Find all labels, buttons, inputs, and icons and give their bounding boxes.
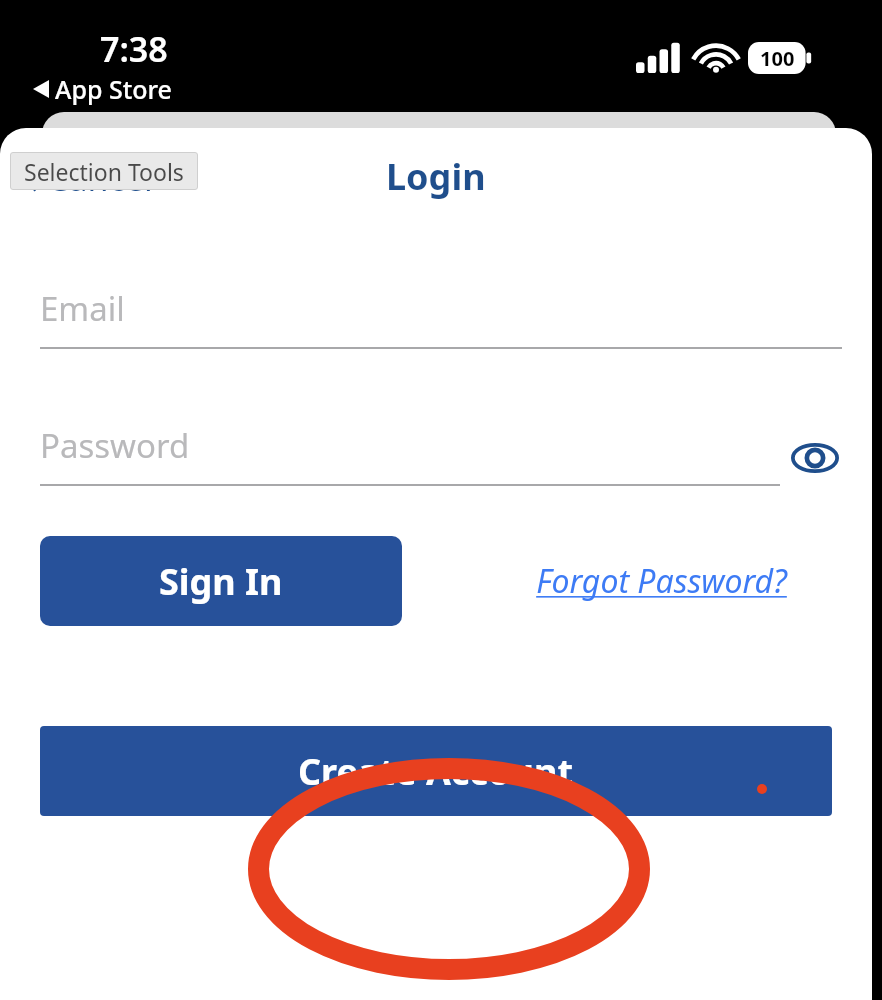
button[interactable]: Cancel: [18, 153, 157, 203]
button[interactable]: Email: [40, 286, 842, 349]
staticText: 7:38: [100, 26, 168, 72]
staticText: Password: [40, 423, 190, 468]
staticText: Create Account: [298, 747, 574, 796]
button[interactable]: Forgot Password?: [403, 559, 872, 603]
staticText: 100: [760, 45, 795, 72]
staticText: App Store: [55, 72, 172, 106]
staticText: Cancel: [47, 155, 153, 201]
button[interactable]: Create Account: [40, 726, 832, 816]
staticText: Forgot Password?: [536, 559, 787, 603]
staticText: Email: [40, 286, 125, 331]
button[interactable]: Show password: [788, 438, 842, 478]
staticText: Selection Tools: [24, 156, 184, 187]
staticText: Sign In: [159, 557, 283, 606]
button[interactable]: Sign In: [40, 536, 402, 626]
staticText: Login: [386, 152, 486, 201]
button[interactable]: Password: [40, 423, 780, 486]
